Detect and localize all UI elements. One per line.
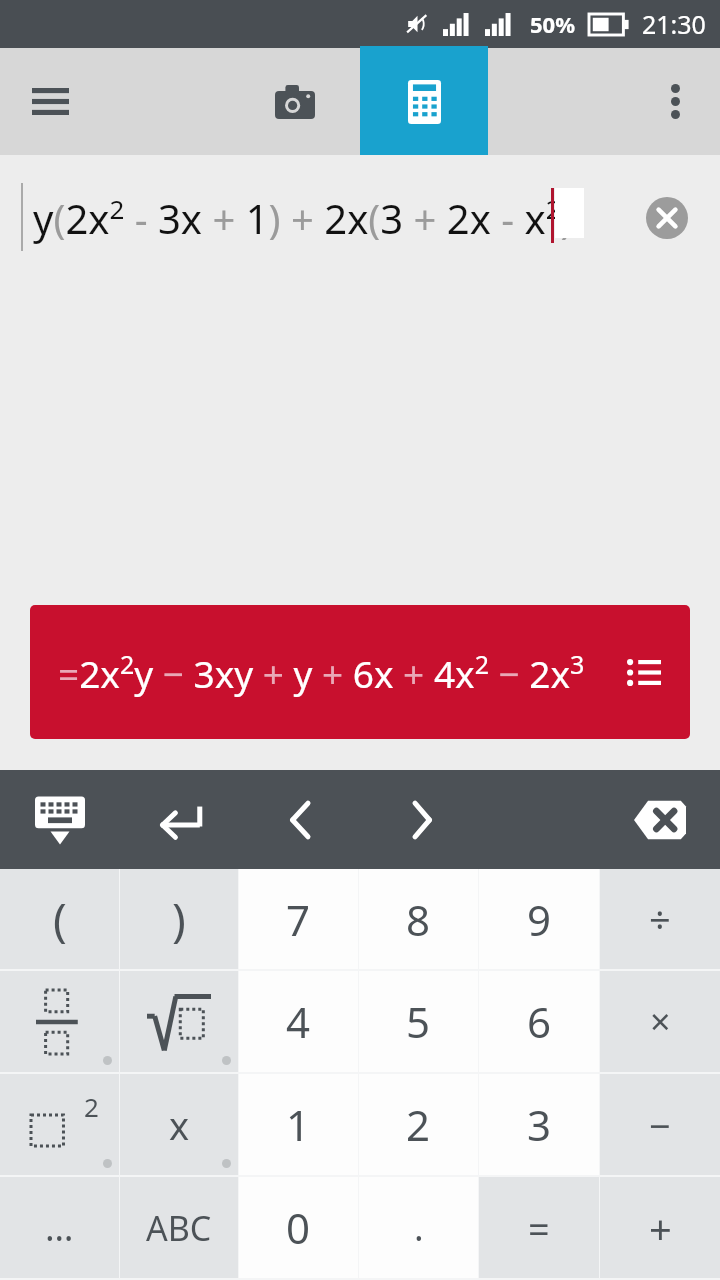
button[interactable]: 3 — [479, 1074, 599, 1175]
button[interactable]: =2x2y − 3xy + y + 6x + 4x2 − 2x3 — [30, 605, 690, 739]
staticText: =2x2y − 3xy + y + 6x + 4x2 − 2x3 — [58, 647, 585, 698]
staticText: 21:30 — [642, 7, 706, 41]
staticText: + — [649, 1201, 672, 1255]
staticText: 6 — [527, 993, 552, 1050]
staticText: ÷ — [649, 893, 671, 945]
staticText: y(2x2 - 3x + 1) + 2x(3 + 2x - x2) — [33, 191, 573, 245]
button[interactable]: New line — [120, 770, 240, 869]
button[interactable]: ) — [120, 869, 238, 969]
staticText: 2 — [406, 1096, 431, 1153]
staticText: × — [650, 997, 671, 1046]
button[interactable] — [120, 971, 238, 1072]
other: Show steps — [622, 650, 666, 694]
button[interactable]: x — [120, 1074, 238, 1175]
staticText: 5 — [406, 993, 431, 1050]
staticText: 1 — [286, 1096, 311, 1153]
button[interactable]: 9 — [479, 869, 599, 969]
button[interactable]: Move right — [360, 770, 480, 869]
button[interactable]: 4 — [239, 971, 358, 1072]
staticText: 3 — [527, 1096, 552, 1153]
staticText: . — [414, 1203, 424, 1252]
staticText: ) — [172, 888, 186, 951]
button[interactable]: Camera — [247, 48, 343, 155]
button[interactable]: Calculator — [360, 48, 488, 155]
staticText: 2 — [84, 1089, 99, 1124]
staticText: 0 — [286, 1199, 311, 1256]
button[interactable]: 1 — [239, 1074, 358, 1175]
button[interactable]: − — [600, 1074, 720, 1175]
staticText: x — [169, 1099, 190, 1151]
button[interactable]: 2 — [0, 1074, 119, 1175]
button[interactable]: Backspace — [600, 770, 720, 869]
staticText: = — [528, 1202, 550, 1254]
button[interactable]: + — [600, 1177, 720, 1278]
button[interactable]: Hide keyboard — [0, 770, 120, 869]
button[interactable]: ( — [0, 869, 119, 969]
button[interactable]: . — [359, 1177, 478, 1278]
button[interactable]: Clear — [641, 192, 693, 244]
staticText: 7 — [286, 891, 311, 948]
button[interactable]: ÷ — [600, 869, 720, 969]
button[interactable]: 7 — [239, 869, 358, 969]
button[interactable]: = — [479, 1177, 599, 1278]
staticText: ( — [53, 888, 67, 951]
button[interactable]: 5 — [359, 971, 478, 1072]
button[interactable]: Menu — [0, 48, 100, 155]
button[interactable]: 6 — [479, 971, 599, 1072]
staticText: ABC — [146, 1205, 212, 1251]
button[interactable]: × — [600, 971, 720, 1072]
staticText: 8 — [406, 891, 431, 948]
button[interactable]: More options — [630, 48, 720, 155]
staticText: 4 — [286, 993, 311, 1050]
button[interactable]: 2 — [359, 1074, 478, 1175]
staticText: 9 — [527, 891, 552, 948]
button[interactable] — [0, 971, 119, 1072]
staticText: 50% — [530, 9, 576, 39]
button[interactable]: 8 — [359, 869, 478, 969]
button[interactable]: ABC — [120, 1177, 238, 1278]
button[interactable]: … — [0, 1177, 119, 1278]
staticText: − — [649, 1099, 671, 1151]
button[interactable]: 0 — [239, 1177, 358, 1278]
button[interactable]: Move left — [240, 770, 360, 869]
staticText: … — [45, 1203, 74, 1252]
